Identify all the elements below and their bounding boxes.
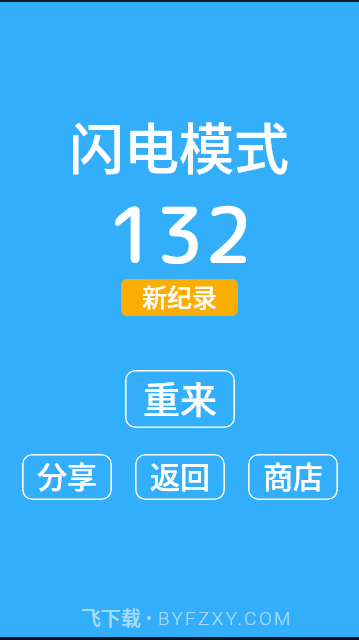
staticText: 分享 [37, 454, 97, 496]
staticText: 商店 [263, 454, 323, 496]
staticText: 飞下载 [81, 603, 141, 632]
button[interactable]: Back [135, 454, 225, 500]
button[interactable]: New record [121, 279, 238, 316]
button[interactable]: Restart [125, 370, 235, 428]
staticText: • [141, 606, 158, 629]
staticText: 重来 [143, 371, 217, 425]
staticText: 新纪录 [142, 279, 218, 314]
button[interactable]: Share [22, 454, 112, 500]
staticText: 闪电模式 [69, 105, 290, 185]
button[interactable]: Store [248, 454, 338, 500]
staticText: BYFZXY.COM [158, 607, 293, 629]
staticText: 返回 [150, 454, 210, 496]
staticText: 132 [107, 180, 253, 287]
